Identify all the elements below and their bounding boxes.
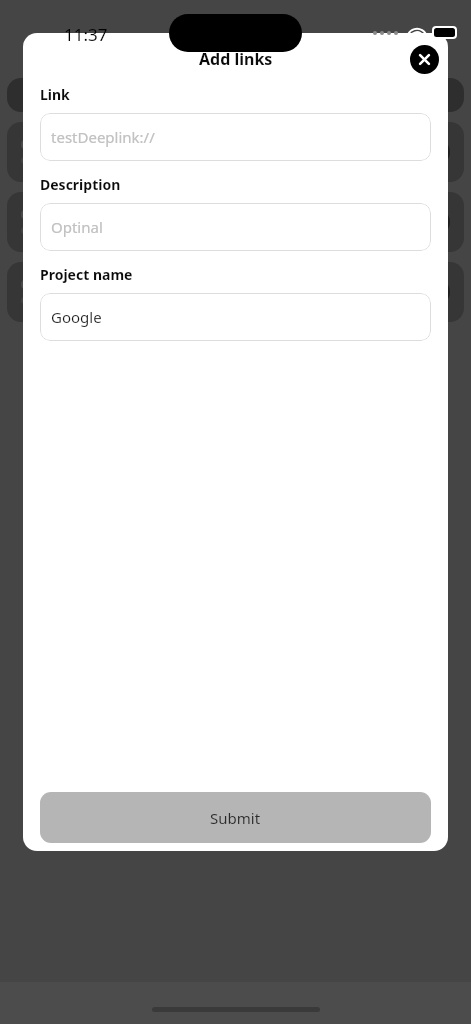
staticText: 11:37 (64, 23, 108, 46)
staticText: Description (40, 175, 121, 194)
staticText: testDeeplink:// (51, 127, 155, 147)
staticText: Project name (40, 265, 133, 284)
staticText: Link (40, 85, 70, 104)
staticText: Optinal (51, 217, 103, 237)
staticText: Submit (210, 808, 261, 828)
button[interactable]: Optinal (40, 203, 431, 251)
button[interactable]: Close (410, 45, 439, 74)
button[interactable]: testDeeplink:// (40, 113, 431, 161)
staticText: Add links (199, 48, 273, 70)
staticText: Google (51, 307, 102, 327)
button[interactable]: Submit (40, 792, 431, 843)
button[interactable]: Google (40, 293, 431, 341)
